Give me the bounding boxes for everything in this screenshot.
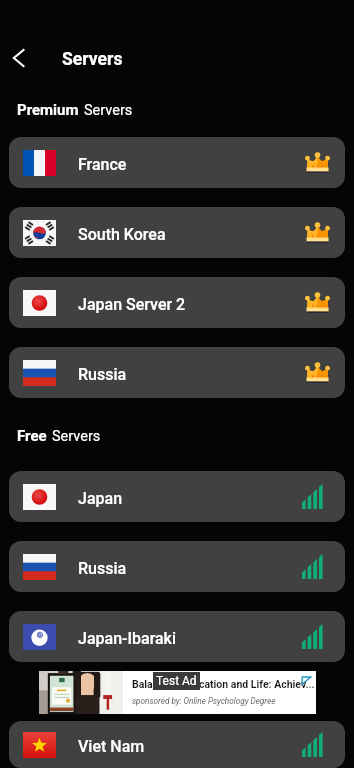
button[interactable]: Japan-Ibaraki (9, 611, 345, 662)
staticText: Servers (52, 428, 101, 445)
staticText: sponsored by: Online Psychology Degree (132, 696, 276, 706)
button[interactable]: Viet Nam (9, 721, 345, 768)
staticText: Russia (78, 365, 304, 384)
staticText: Japan Server 2 (78, 295, 304, 314)
staticText: Servers (84, 102, 133, 119)
button[interactable]: France (9, 137, 345, 188)
staticText: Free (17, 427, 47, 445)
staticText: South Korea (78, 225, 304, 244)
staticText: France (78, 155, 304, 174)
button[interactable]: Japan (9, 471, 345, 522)
button[interactable]: Russia (9, 541, 345, 592)
staticText: Japan (78, 489, 302, 508)
staticText: Premium (17, 101, 79, 119)
staticText: Servers (62, 49, 123, 70)
button[interactable]: Japan Server 2 (9, 277, 345, 328)
button[interactable]: Russia (9, 347, 345, 398)
staticText: Balancing Education and Life: Achiev... (132, 678, 315, 690)
staticText: Russia (78, 559, 302, 578)
staticText: Japan-Ibaraki (78, 629, 302, 648)
button[interactable]: Back (0, 37, 44, 81)
button[interactable]: South Korea (9, 207, 345, 258)
button[interactable]: Balancing Education and Life: Achiev... (39, 671, 316, 714)
staticText: Test Ad (156, 674, 197, 688)
staticText: Viet Nam (78, 737, 302, 756)
